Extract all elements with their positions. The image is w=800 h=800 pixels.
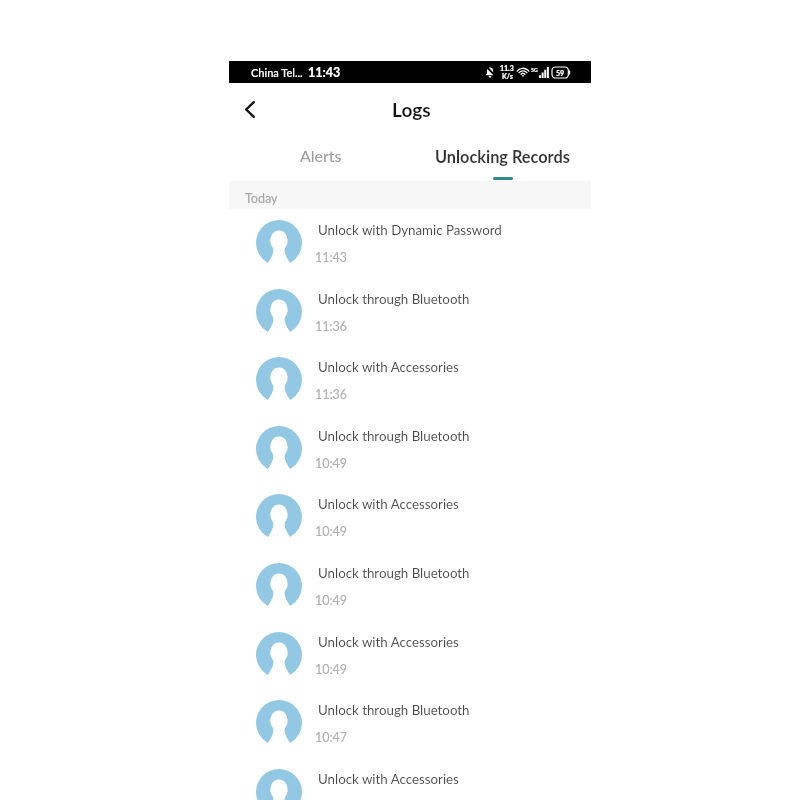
staticText: 11:36 (315, 387, 348, 402)
staticText: Unlock with Accessories (318, 634, 459, 650)
button[interactable]: Unlocking Records (410, 135, 591, 181)
button[interactable]: Unlock through Bluetooth (229, 278, 591, 347)
staticText: China Tel... (251, 66, 303, 79)
button[interactable]: Unlock through Bluetooth (229, 552, 591, 621)
button[interactable]: Back (231, 90, 269, 128)
button[interactable]: Unlock through Bluetooth (229, 415, 591, 484)
staticText: 10:49 (315, 662, 348, 677)
staticText: 10:49 (315, 593, 348, 608)
staticText: Unlock with Dynamic Password (318, 222, 502, 238)
staticText: K/s (502, 72, 513, 80)
staticText: 10:49 (315, 456, 348, 471)
staticText: 11.3 (500, 64, 514, 72)
staticText: Unlocking Records (435, 147, 570, 167)
staticText: Unlock with Accessories (318, 496, 459, 512)
button[interactable]: Unlock with Accessories (229, 483, 591, 552)
button[interactable]: Unlock with Accessories (229, 621, 591, 690)
staticText: 11:43 (308, 65, 341, 80)
staticText: Unlock through Bluetooth (318, 291, 470, 307)
staticText: Alerts (300, 146, 342, 165)
staticText: 5G (531, 67, 538, 73)
button[interactable]: Unlock with Accessories (229, 346, 591, 415)
staticText: 10:49 (315, 524, 348, 539)
staticText: Logs (392, 98, 431, 121)
staticText: 11:36 (315, 319, 348, 334)
button[interactable]: Unlock through Bluetooth (229, 689, 591, 758)
staticText: Unlock with Accessories (318, 771, 459, 787)
staticText: Unlock with Accessories (318, 359, 459, 375)
staticText: Unlock through Bluetooth (318, 565, 470, 581)
staticText: Today (245, 191, 278, 206)
staticText: 10:47 (315, 730, 348, 745)
button[interactable]: Unlock with Dynamic Password (229, 209, 591, 278)
staticText: Unlock through Bluetooth (318, 702, 470, 718)
staticText: 59 (556, 69, 565, 77)
staticText: 11:43 (315, 250, 348, 265)
staticText: Unlock through Bluetooth (318, 428, 470, 444)
button[interactable]: Alerts (229, 135, 410, 181)
button[interactable]: Unlock with Accessories (229, 758, 591, 800)
